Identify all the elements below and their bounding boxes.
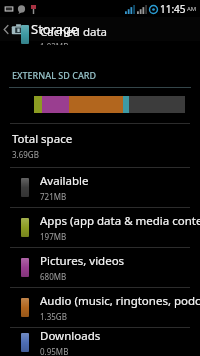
button[interactable]: Downloads: [0, 328, 200, 356]
staticText: Total space: [12, 131, 73, 147]
staticText: Pictures, videos: [40, 253, 125, 269]
staticText: EXTERNAL SD CARD: [12, 69, 97, 81]
staticText: 11:45: [160, 2, 186, 16]
button[interactable]: Navigate up to settings, Storage: [0, 17, 200, 41]
staticText: 0.95MB: [40, 346, 69, 356]
button[interactable]: Cached data: [0, 41, 200, 62]
staticText: Apps (app data & media content): [40, 213, 200, 229]
staticText: 197MB: [40, 231, 67, 242]
button[interactable]: Apps (app data & media content): [0, 208, 200, 247]
button[interactable]: Total space: [0, 124, 200, 167]
staticText: AM: [187, 5, 197, 13]
staticText: 721MB: [40, 191, 67, 202]
button[interactable]: Available: [0, 168, 200, 207]
staticText: 1.35GB: [40, 311, 67, 322]
staticText: Storage: [31, 20, 79, 38]
button[interactable]: Pictures, videos: [0, 248, 200, 287]
staticText: 3.69GB: [12, 149, 39, 160]
staticText: 680MB: [40, 271, 67, 282]
staticText: Downloads: [40, 328, 101, 344]
staticText: Cached data: [40, 24, 108, 40]
staticText: Available: [40, 173, 89, 189]
staticText: Audio (music, ringtones, podcasts): [40, 293, 200, 309]
staticText: 1.92MB: [40, 41, 69, 45]
button[interactable]: Audio (music, ringtones, podcasts): [0, 288, 200, 327]
